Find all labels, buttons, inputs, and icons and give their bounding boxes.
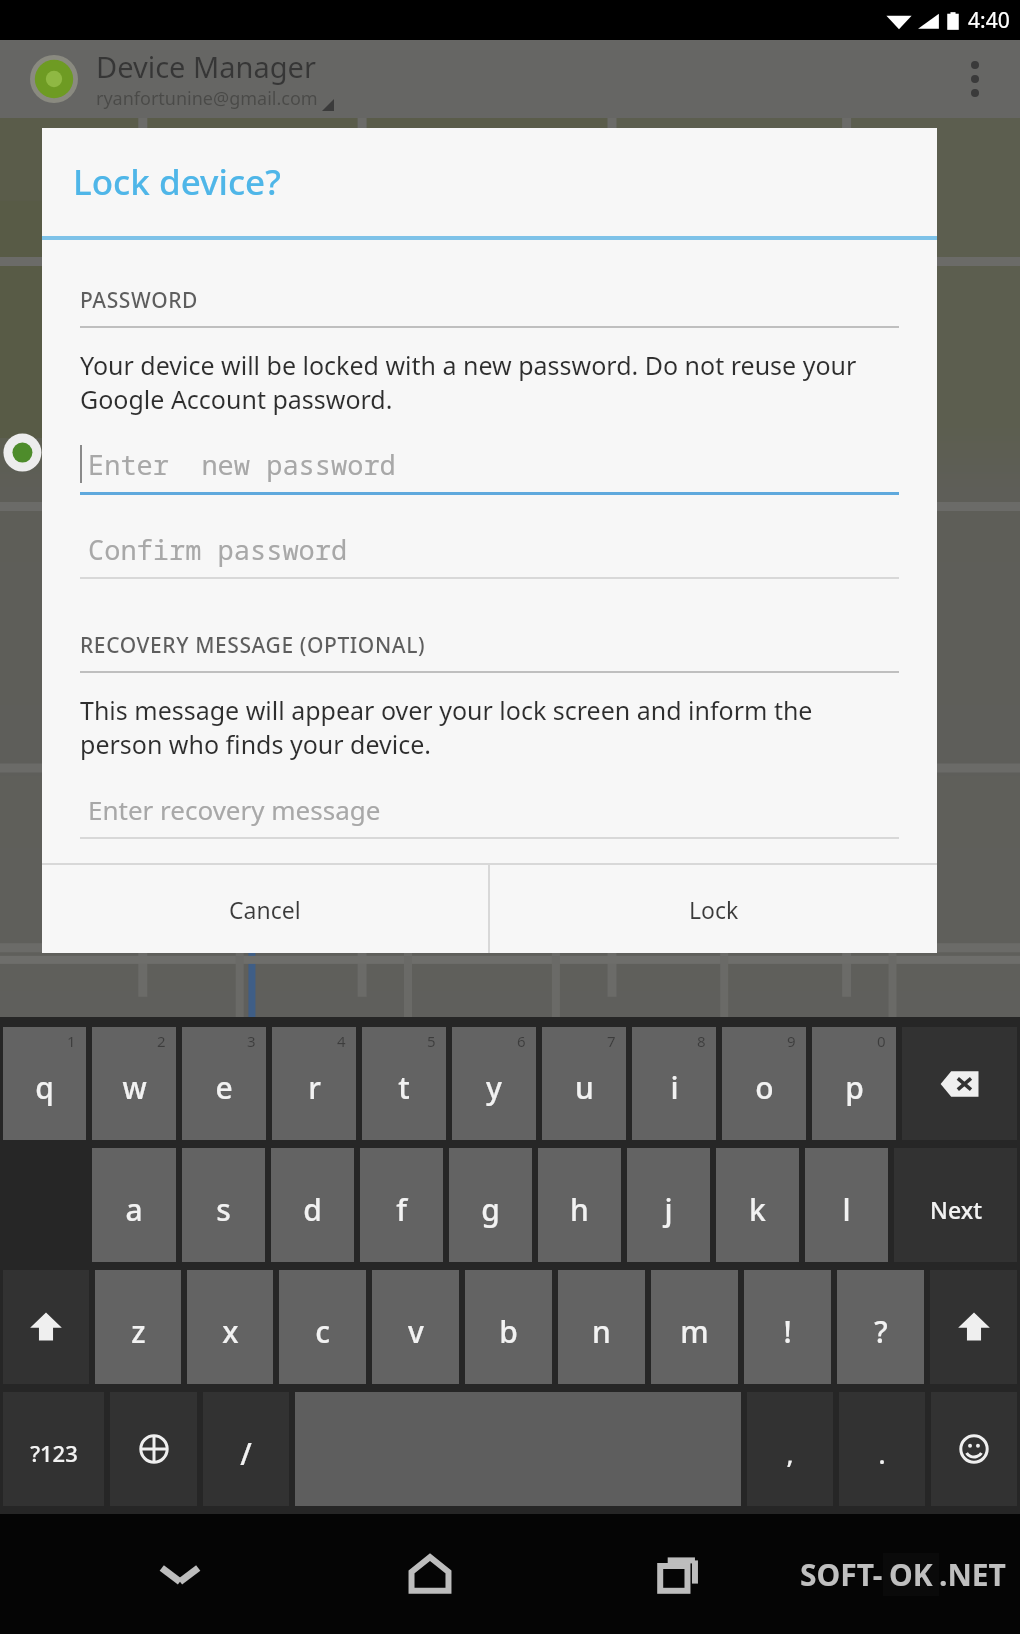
- button[interactable]: Shift: [3, 1270, 89, 1384]
- button[interactable]: x: [187, 1270, 273, 1384]
- button[interactable]: Enter recovery message: [80, 781, 899, 839]
- button[interactable]: z: [95, 1270, 181, 1384]
- staticText: a: [125, 1189, 143, 1230]
- button[interactable]: s: [182, 1148, 265, 1262]
- staticText: 7: [607, 1031, 616, 1051]
- staticText: 1: [67, 1031, 76, 1051]
- staticText: This message will appear over your lock …: [80, 693, 899, 761]
- button[interactable]: ,: [747, 1392, 833, 1506]
- button[interactable]: Enter new password: [80, 436, 899, 495]
- staticText: ?: [874, 1311, 888, 1352]
- button[interactable]: h: [538, 1148, 621, 1262]
- staticText: c: [315, 1311, 330, 1352]
- staticText: 5: [427, 1031, 436, 1051]
- staticText: l: [842, 1189, 851, 1230]
- button[interactable]: c: [279, 1270, 366, 1384]
- button[interactable]: 1: [3, 1027, 86, 1140]
- staticText: n: [592, 1311, 611, 1352]
- button[interactable]: d: [271, 1148, 354, 1262]
- staticText: ,: [786, 1436, 794, 1471]
- button[interactable]: f: [360, 1148, 443, 1262]
- staticText: b: [499, 1311, 518, 1352]
- button[interactable]: j: [627, 1148, 710, 1262]
- staticText: Lock device?: [73, 158, 281, 206]
- button[interactable]: 5: [362, 1027, 446, 1140]
- staticText: t: [398, 1067, 410, 1108]
- staticText: Your device will be locked with a new pa…: [80, 348, 899, 416]
- staticText: .: [878, 1436, 886, 1471]
- staticText: 4:40: [968, 6, 1010, 35]
- button[interactable]: More options: [948, 40, 1002, 118]
- staticText: g: [481, 1189, 500, 1230]
- staticText: z: [131, 1311, 146, 1352]
- staticText: 6: [517, 1031, 526, 1051]
- button[interactable]: Lock: [490, 865, 937, 953]
- staticText: o: [755, 1067, 774, 1108]
- staticText: Device Manager: [96, 47, 316, 86]
- button[interactable]: b: [465, 1270, 552, 1384]
- button[interactable]: .: [839, 1392, 925, 1506]
- button[interactable]: Home: [360, 1514, 500, 1634]
- staticText: j: [664, 1189, 673, 1230]
- staticText: SOFT-: [800, 1554, 883, 1595]
- button[interactable]: 8: [632, 1027, 716, 1140]
- button[interactable]: Shift: [930, 1270, 1017, 1384]
- button[interactable]: Confirm password: [80, 521, 899, 579]
- button[interactable]: n: [558, 1270, 645, 1384]
- staticText: e: [215, 1067, 233, 1108]
- button[interactable]: /: [203, 1392, 289, 1506]
- staticText: m: [680, 1311, 709, 1352]
- staticText: PASSWORD: [80, 286, 199, 315]
- staticText: Next: [930, 1194, 982, 1225]
- button[interactable]: Hide keyboard: [110, 1514, 250, 1634]
- button[interactable]: Change input method: [110, 1392, 197, 1506]
- staticText: v: [408, 1311, 424, 1352]
- staticText: h: [570, 1189, 589, 1230]
- button[interactable]: l: [805, 1148, 888, 1262]
- staticText: ?123: [30, 1438, 78, 1468]
- staticText: OK: [889, 1554, 933, 1595]
- staticText: k: [749, 1189, 766, 1230]
- button[interactable]: !: [744, 1270, 831, 1384]
- staticText: Cancel: [229, 894, 301, 925]
- staticText: 3: [247, 1031, 256, 1051]
- button[interactable]: g: [449, 1148, 532, 1262]
- button[interactable]: ?123: [3, 1392, 104, 1506]
- button[interactable]: ?: [837, 1270, 924, 1384]
- button[interactable]: 4: [272, 1027, 356, 1140]
- staticText: !: [783, 1311, 792, 1352]
- button[interactable]: 0: [812, 1027, 896, 1140]
- button[interactable]: 6: [452, 1027, 536, 1140]
- staticText: r: [308, 1067, 321, 1108]
- button[interactable]: 9: [722, 1027, 806, 1140]
- button[interactable]: 7: [542, 1027, 626, 1140]
- staticText: 4: [337, 1031, 346, 1051]
- staticText: f: [396, 1189, 407, 1230]
- button[interactable]: v: [372, 1270, 459, 1384]
- button[interactable]: Next: [894, 1148, 1017, 1262]
- button[interactable]: m: [651, 1270, 738, 1384]
- staticText: Confirm password: [88, 531, 348, 568]
- staticText: d: [303, 1189, 322, 1230]
- staticText: 8: [697, 1031, 706, 1051]
- staticText: /: [240, 1433, 252, 1474]
- button[interactable]: Recent apps: [610, 1514, 750, 1634]
- button[interactable]: k: [716, 1148, 799, 1262]
- button[interactable]: Delete: [902, 1027, 1017, 1140]
- button[interactable]: a: [92, 1148, 176, 1262]
- staticText: Lock: [689, 894, 739, 925]
- staticText: Enter new password: [88, 446, 396, 483]
- button[interactable]: 2: [92, 1027, 176, 1140]
- staticText: y: [486, 1067, 502, 1108]
- staticText: i: [670, 1067, 679, 1108]
- button[interactable]: Emoji: [931, 1392, 1017, 1506]
- staticText: .NET: [939, 1554, 1006, 1595]
- staticText: 9: [787, 1031, 796, 1051]
- staticText: u: [575, 1067, 594, 1108]
- button[interactable]: 3: [182, 1027, 266, 1140]
- staticText: s: [216, 1189, 231, 1230]
- staticText: w: [122, 1067, 147, 1108]
- staticText: 2: [157, 1031, 166, 1051]
- button[interactable]: Cancel: [42, 865, 488, 953]
